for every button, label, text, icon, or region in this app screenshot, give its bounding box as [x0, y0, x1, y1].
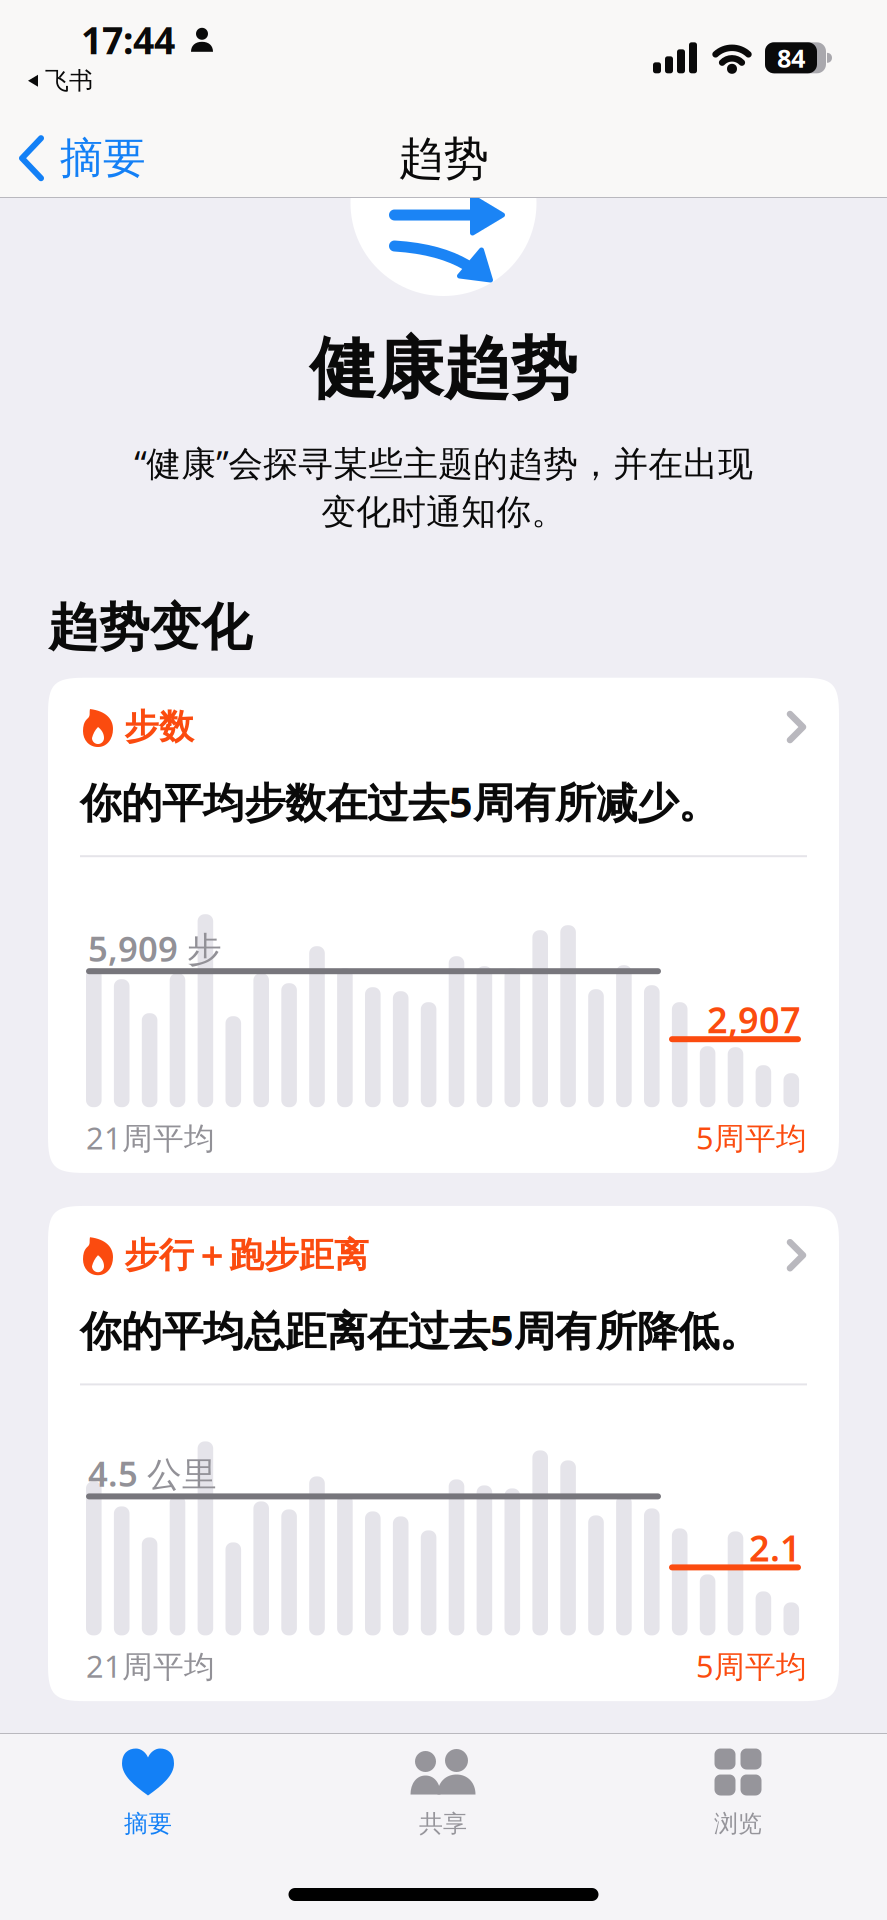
staticText: 你的平均步数在过去5周有所减少。 [80, 774, 719, 829]
staticText: 共享 [419, 1809, 467, 1838]
staticText: 健康趋势 [309, 328, 577, 410]
staticText: 5周平均 [696, 1117, 807, 1158]
staticText: 2,907 [707, 995, 801, 1043]
staticText: 摘要 [60, 132, 146, 184]
staticText: 趋势 [398, 131, 488, 187]
button[interactable]: 摘要 [28, 1747, 268, 1838]
staticText: 趋势变化 [48, 596, 252, 659]
button[interactable]: 步行＋跑步距离 [48, 1206, 839, 1701]
button[interactable]: 返回飞书 [0, 0, 93, 95]
staticText: 21周平均 [86, 1645, 215, 1686]
staticText: “健康”会探寻某些主题的趋势，并在出现 变化时通知你。 [134, 440, 753, 533]
staticText: 步数 [124, 706, 194, 748]
staticText: 2.1 [749, 1524, 801, 1571]
staticText: 摘要 [124, 1809, 172, 1838]
button[interactable]: 步数 [48, 678, 839, 1173]
staticText: 浏览 [714, 1809, 762, 1838]
staticText: 飞书 [45, 66, 93, 95]
button[interactable]: 共享 [323, 1747, 563, 1838]
staticText: 84 [777, 41, 805, 75]
staticText: 5周平均 [696, 1645, 807, 1686]
staticText: 21周平均 [86, 1117, 215, 1158]
staticText: 5,909 步 [88, 925, 222, 971]
button[interactable]: 摘要 [0, 100, 146, 184]
staticText: 步行＋跑步距离 [124, 1234, 369, 1276]
staticText: 17:44 [81, 15, 175, 65]
staticText: 你的平均总距离在过去5周有所降低。 [80, 1302, 760, 1357]
staticText: 4.5 公里 [88, 1450, 217, 1496]
button[interactable]: 浏览 [618, 1747, 858, 1838]
